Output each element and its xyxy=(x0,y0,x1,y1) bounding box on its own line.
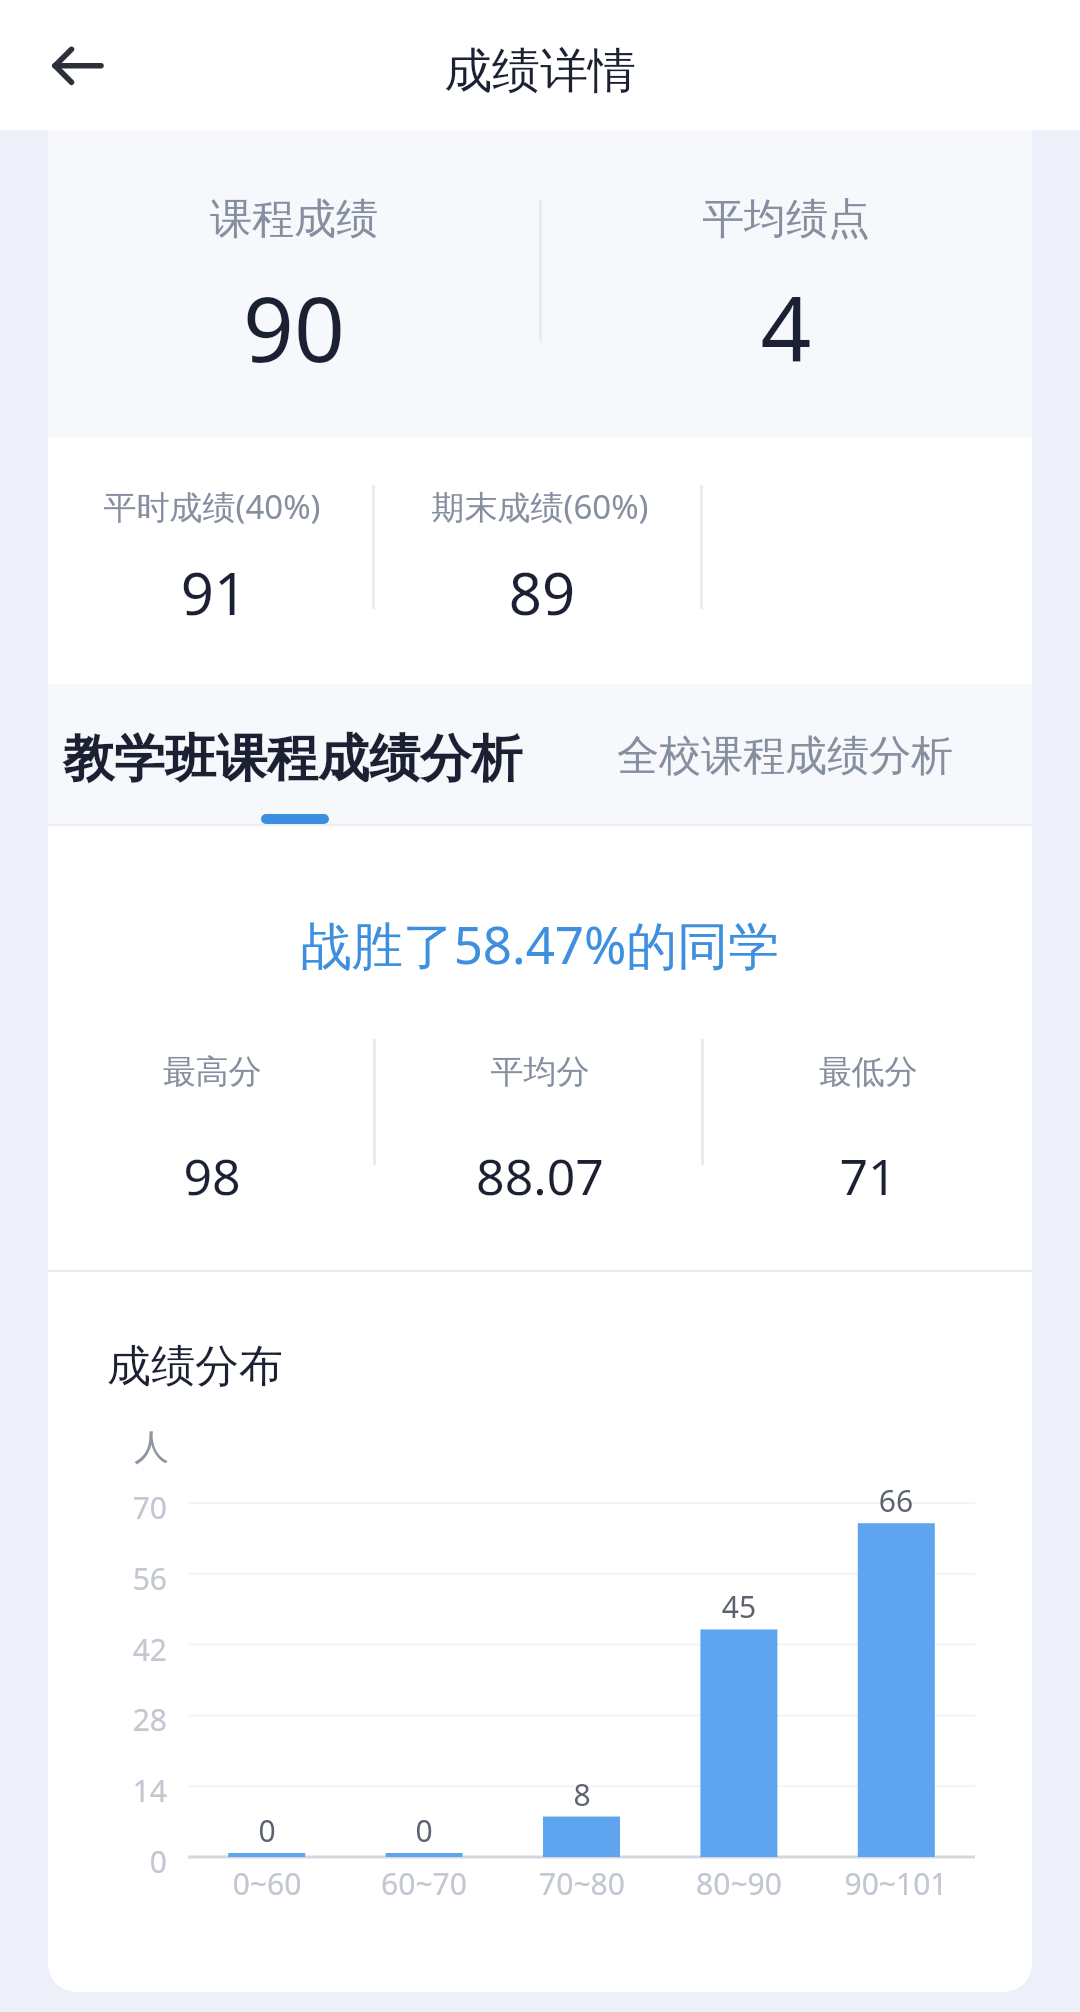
staticText: 89 xyxy=(242,553,842,632)
staticText: 56 xyxy=(48,1558,167,1599)
staticText: 期末成绩(60%) xyxy=(240,484,840,529)
staticText: 课程成绩 xyxy=(48,193,594,246)
button[interactable]: Back xyxy=(42,29,114,101)
staticText: 14 xyxy=(48,1770,167,1811)
staticText: 66 xyxy=(796,1480,996,1521)
staticText: 平均绩点 xyxy=(486,193,1032,246)
staticText: 4 xyxy=(486,267,1032,388)
staticText: 全校课程成绩分析 xyxy=(617,730,953,783)
button[interactable]: 教学班课程成绩分析 xyxy=(48,684,588,824)
staticText: 91 xyxy=(48,553,514,632)
staticText: 98 xyxy=(48,1142,512,1210)
staticText: 71 xyxy=(568,1142,1032,1210)
staticText: 战胜了58.47%的同学 xyxy=(240,909,840,979)
staticText: 28 xyxy=(48,1699,167,1740)
staticText: 90 xyxy=(48,267,594,388)
staticText: 成绩分布 xyxy=(107,1339,283,1394)
staticText: 0 xyxy=(324,1810,524,1851)
staticText: 最高分 xyxy=(48,1051,512,1093)
staticText: 0 xyxy=(48,1841,167,1882)
staticText: 88.07 xyxy=(240,1142,840,1210)
staticText: 人 xyxy=(134,1425,169,1469)
staticText: 70~80 xyxy=(482,1863,682,1904)
staticText: 42 xyxy=(48,1629,167,1670)
staticText: 90~101 xyxy=(796,1863,996,1904)
staticText: 45 xyxy=(639,1586,839,1627)
staticText: 平均分 xyxy=(240,1051,840,1093)
staticText: 60~70 xyxy=(324,1863,524,1904)
staticText: 教学班课程成绩分析 xyxy=(63,727,522,791)
staticText: 最低分 xyxy=(568,1051,1032,1093)
staticText: 70 xyxy=(48,1487,167,1528)
staticText: 80~90 xyxy=(639,1863,839,1904)
staticText: 0 xyxy=(167,1810,367,1851)
staticText: 0~60 xyxy=(167,1863,367,1904)
staticText: 8 xyxy=(482,1774,682,1815)
staticText: 成绩详情 xyxy=(240,41,840,101)
button[interactable]: 全校课程成绩分析 xyxy=(588,684,1032,824)
staticText: 平时成绩(40%) xyxy=(48,484,512,529)
